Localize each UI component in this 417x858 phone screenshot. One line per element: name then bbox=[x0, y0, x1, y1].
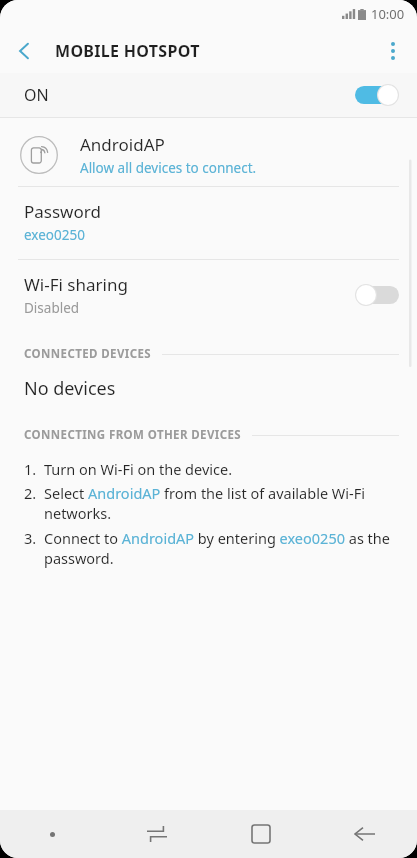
button[interactable]: Home bbox=[209, 810, 313, 858]
button[interactable]: AndroidAP bbox=[0, 124, 417, 186]
other: Indicator bbox=[0, 810, 105, 858]
staticText: Password bbox=[24, 200, 101, 223]
staticText: 3. bbox=[24, 528, 44, 548]
button[interactable]: Back bbox=[0, 28, 48, 73]
staticText: Allow all devices to connect. bbox=[80, 159, 257, 177]
button[interactable]: ON bbox=[0, 73, 417, 117]
button[interactable]: More options bbox=[369, 28, 417, 73]
button[interactable]: Recents bbox=[105, 810, 209, 858]
staticText: CONNECTED DEVICES bbox=[24, 346, 152, 362]
staticText: CONNECTING FROM OTHER DEVICES bbox=[24, 427, 242, 443]
button[interactable]: Wi-Fi sharing bbox=[0, 260, 417, 332]
staticText: No devices bbox=[24, 376, 116, 401]
staticText: 10:00 bbox=[371, 5, 405, 23]
staticText: exeo0250 bbox=[24, 226, 85, 244]
staticText: AndroidAP bbox=[80, 133, 165, 156]
staticText: 1. bbox=[24, 459, 44, 479]
staticText: Disabled bbox=[24, 299, 80, 317]
button[interactable]: Password bbox=[0, 187, 417, 259]
staticText: MOBILE HOTSPOT bbox=[55, 40, 200, 62]
staticText: Wi-Fi sharing bbox=[24, 273, 128, 296]
staticText: Select AndroidAP from the list of availa… bbox=[44, 483, 397, 524]
staticText: 2. bbox=[24, 483, 44, 503]
staticText: Turn on Wi-Fi on the device. bbox=[44, 459, 233, 479]
staticText: ON bbox=[24, 84, 49, 106]
staticText: Connect to AndroidAP by entering exeo025… bbox=[44, 528, 397, 569]
button[interactable]: Back bbox=[313, 810, 417, 858]
